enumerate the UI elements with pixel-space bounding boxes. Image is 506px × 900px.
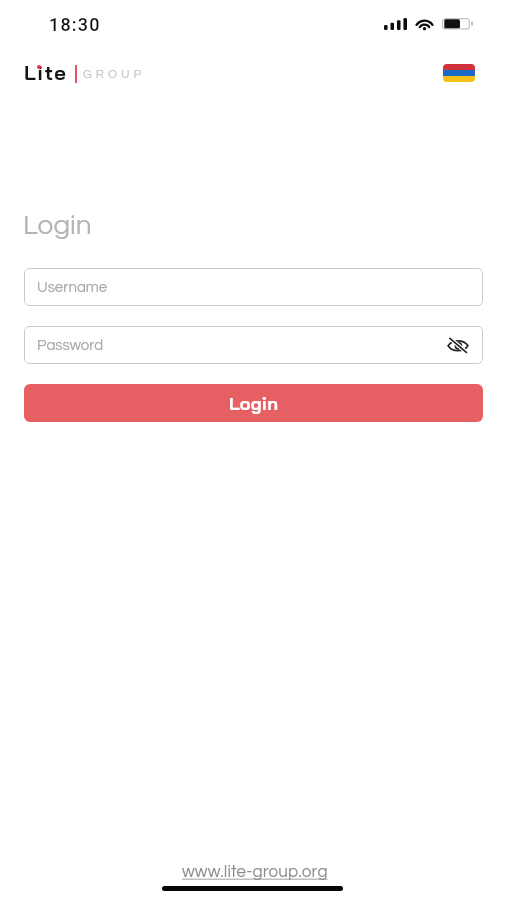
- staticText: Login: [229, 392, 279, 415]
- staticText: Username: [37, 280, 108, 295]
- button[interactable]: Login: [24, 384, 483, 422]
- button[interactable]: Username: [24, 268, 483, 306]
- button[interactable]: Show password: [445, 332, 471, 358]
- staticText: Password: [37, 338, 104, 353]
- staticText: Lite: [24, 60, 68, 85]
- staticText: 18:30: [49, 14, 101, 35]
- button[interactable]: Password: [24, 326, 483, 364]
- button[interactable]: Change language: [443, 64, 475, 82]
- staticText: Login: [23, 211, 92, 240]
- staticText: GROUP: [83, 68, 146, 80]
- button[interactable]: www.lite-group.org: [182, 863, 328, 881]
